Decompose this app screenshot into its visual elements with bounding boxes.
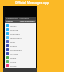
staticText: Name Last message <box>5 20 35 23</box>
staticText: Trash <box>10 60 17 63</box>
staticText: Snoozed <box>10 32 20 35</box>
staticText: Spam <box>10 56 17 59</box>
button[interactable]: Social <box>5 63 36 67</box>
button[interactable]: Scheduled <box>5 47 36 51</box>
button[interactable]: Drafts <box>5 43 36 47</box>
staticText: Inbox <box>10 24 17 27</box>
staticText: All mail <box>10 52 19 55</box>
staticText: Official Messages app <box>15 1 49 5</box>
button[interactable]: Important <box>5 35 36 39</box>
staticText: Sent <box>10 40 16 43</box>
staticText: Important <box>10 36 22 39</box>
staticText: Categories Contacts <box>5 17 30 20</box>
button[interactable]: All mail <box>5 51 36 55</box>
staticText: Starred <box>10 28 19 31</box>
staticText: Social <box>10 64 17 67</box>
button[interactable]: Snoozed <box>5 31 36 35</box>
button[interactable]: Spam <box>5 55 36 59</box>
button[interactable]: Sent <box>5 39 36 43</box>
button[interactable]: Inbox <box>5 23 36 27</box>
staticText: Drafts <box>10 44 17 47</box>
button[interactable]: Promotions <box>5 67 36 71</box>
button[interactable]: Trash <box>5 59 36 63</box>
staticText: Scheduled <box>10 48 22 51</box>
button[interactable]: Starred <box>5 27 36 31</box>
